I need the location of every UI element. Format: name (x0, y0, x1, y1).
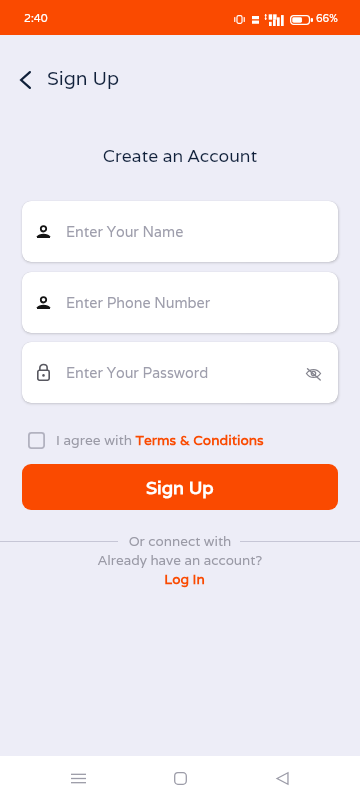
staticText: Enter Your Name (66, 222, 184, 241)
staticText: Already have an account? (0, 551, 360, 569)
button[interactable]: Show password (302, 362, 324, 384)
button[interactable]: Recent apps (54, 756, 102, 800)
staticText: Create an Account (0, 144, 360, 167)
button[interactable]: Back (258, 756, 306, 800)
button[interactable]: Log In (154, 568, 214, 590)
button[interactable]: Back (9, 64, 41, 96)
staticText: Enter Your Password (66, 363, 209, 382)
staticText: I agree with Terms & Conditions (56, 431, 264, 449)
staticText: Enter Phone Number (66, 293, 211, 312)
button[interactable]: Sign Up (22, 464, 338, 510)
staticText: Sign Up (47, 66, 120, 91)
staticText: Sign Up (146, 476, 214, 499)
button[interactable]: Enter Your Password (22, 342, 338, 403)
button[interactable]: I agree with Terms & Conditions (28, 430, 264, 450)
button[interactable]: Enter Your Name (22, 201, 338, 262)
staticText: 66% (316, 11, 338, 25)
staticText: Or connect with (0, 532, 360, 550)
staticText: Log In (164, 570, 205, 588)
staticText: 2:40 (24, 11, 48, 25)
button[interactable]: Enter Phone Number (22, 272, 338, 333)
button[interactable]: Home (156, 756, 204, 800)
